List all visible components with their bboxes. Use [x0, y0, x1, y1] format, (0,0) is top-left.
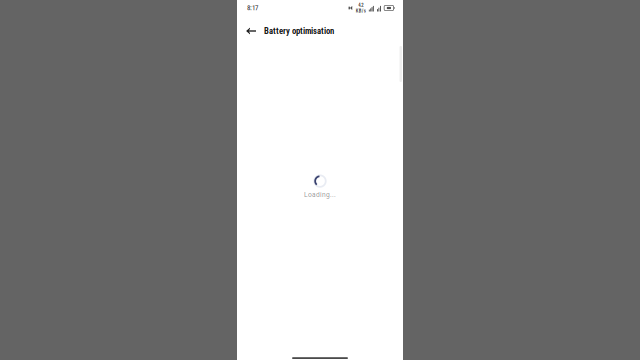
staticText: Battery optimisation [264, 26, 334, 36]
staticText: 8:17 [247, 4, 258, 12]
staticText: 4.2 [358, 2, 363, 8]
button[interactable]: Back [241, 21, 261, 41]
staticText: Loading... [304, 191, 336, 199]
staticText: KB/s [356, 8, 366, 14]
